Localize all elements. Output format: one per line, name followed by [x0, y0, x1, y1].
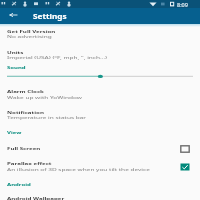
staticText: Wake up with YoWindow: [7, 94, 82, 100]
staticText: Units: [7, 49, 24, 55]
button[interactable]: Back: [6, 8, 21, 23]
staticText: An illusion of 3D space when you tilt th…: [7, 166, 150, 172]
button[interactable]: [0, 27, 200, 41]
staticText: Full Screen: [7, 145, 41, 151]
staticText: Alarm Clock: [7, 88, 44, 94]
button[interactable]: [0, 191, 200, 200]
button[interactable]: [0, 47, 200, 61]
staticText: Get Full Version: [7, 28, 56, 34]
staticText: Temperature in status bar: [7, 114, 87, 120]
button[interactable]: Parallax effect: [180, 163, 190, 171]
staticText: Android Wallpaper: [7, 195, 65, 200]
button[interactable]: [0, 107, 200, 121]
staticText: Settings: [33, 12, 67, 21]
button[interactable]: [0, 158, 200, 173]
staticText: Parallax effect: [7, 160, 52, 166]
staticText: View: [7, 130, 22, 136]
staticText: 8:09: [177, 1, 188, 8]
staticText: Sound: [7, 65, 26, 71]
staticText: No advertising: [7, 33, 52, 39]
staticText: Android: [7, 182, 31, 188]
button[interactable]: Full Screen: [180, 145, 190, 153]
staticText: Notification: [7, 109, 44, 115]
button[interactable]: [0, 85, 200, 99]
button[interactable]: Sound volume: [7, 72, 193, 81]
button[interactable]: [0, 142, 200, 155]
staticText: Imperial (USA) (°F, mph, ", inch…): [7, 54, 108, 60]
